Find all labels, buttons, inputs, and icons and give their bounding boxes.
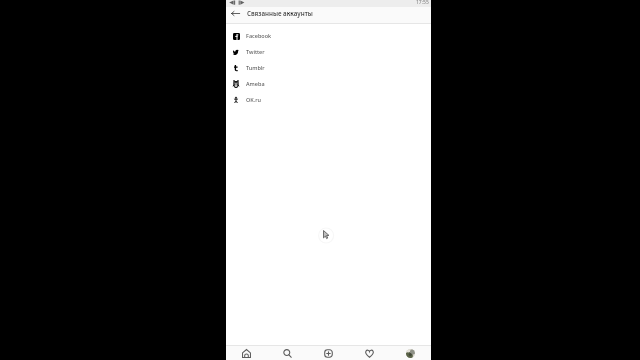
button[interactable]: Home [226,346,267,360]
button[interactable]: Back [229,7,242,22]
staticText: Twitter [246,48,265,55]
button[interactable]: Ameba [226,76,431,92]
staticText: Ameba [246,80,265,87]
button[interactable]: OK.ru [226,92,431,108]
button[interactable]: Search [267,346,308,360]
button[interactable]: Facebook [226,28,431,44]
button[interactable]: Profile [390,346,431,360]
staticText: Связанные аккаунты [247,9,313,17]
button[interactable]: Tumblr [226,60,431,76]
button[interactable]: Add post [308,346,349,360]
staticText: Facebook [246,32,272,39]
staticText: Tumblr [246,64,265,71]
button[interactable]: Twitter [226,44,431,60]
button[interactable]: Activity [349,346,390,360]
staticText: 17:55 [416,0,429,6]
staticText: OK.ru [246,96,262,103]
